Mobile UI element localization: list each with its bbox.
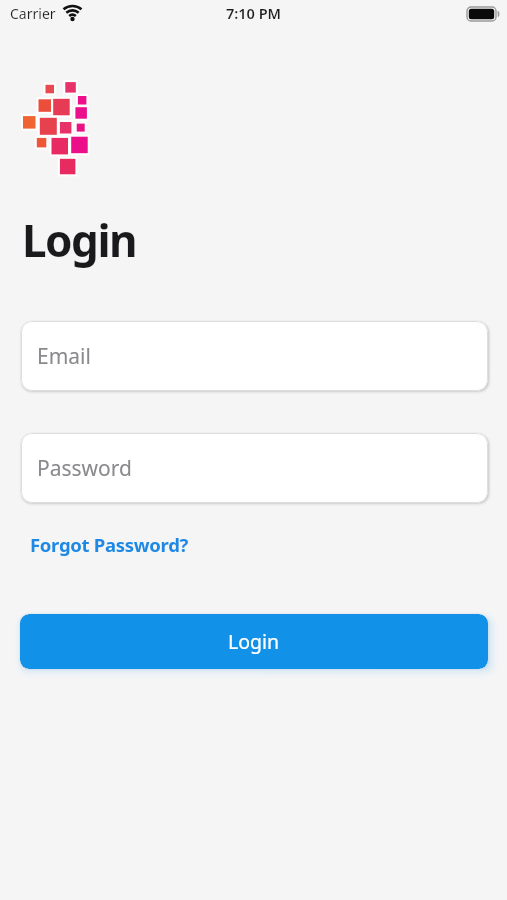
staticText: Login (22, 210, 137, 270)
button[interactable]: Login (20, 614, 488, 669)
staticText: Carrier (10, 4, 56, 23)
button[interactable]: Forgot Password? (30, 532, 189, 557)
staticText: Email (37, 342, 91, 371)
button[interactable]: Email (21, 321, 488, 391)
staticText: Password (37, 454, 132, 483)
staticText: Forgot Password? (30, 532, 189, 557)
button[interactable]: Password (21, 433, 488, 503)
staticText: Login (228, 628, 280, 655)
staticText: 7:10 PM (226, 3, 282, 23)
